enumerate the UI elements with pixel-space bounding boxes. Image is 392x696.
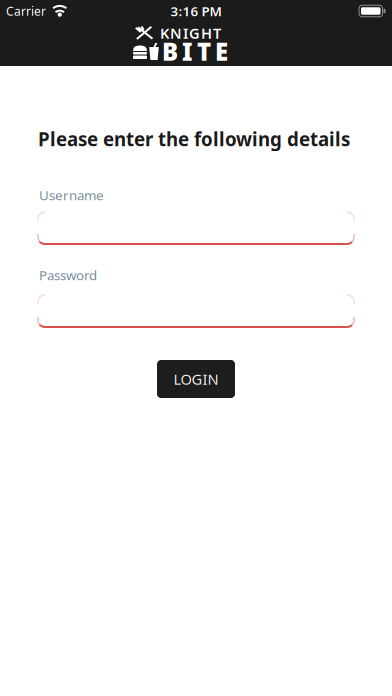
staticText: B I T E <box>162 36 228 67</box>
staticText: Please enter the following details <box>38 127 350 151</box>
staticText: Password <box>39 266 97 284</box>
staticText: Username <box>39 186 104 204</box>
staticText: LOGIN <box>173 369 218 389</box>
button[interactable]: Password <box>38 295 354 327</box>
staticText: Carrier <box>6 3 46 19</box>
button[interactable]: LOGIN <box>157 360 235 398</box>
staticText: K N I G H T <box>160 23 221 43</box>
button[interactable]: Username <box>38 212 354 244</box>
staticText: 3:16 PM <box>170 2 221 20</box>
